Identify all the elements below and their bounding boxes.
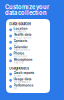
staticText: Ask first [14, 61, 24, 64]
staticText: Always on [14, 30, 27, 33]
staticText: data collection [5, 9, 47, 16]
staticText: Photos [14, 51, 25, 55]
button[interactable]: Health data [6, 33, 50, 39]
button[interactable]: Location [6, 27, 50, 33]
staticText: Off [14, 42, 18, 45]
button[interactable]: Contacts [6, 39, 50, 45]
button[interactable]: Performance [6, 83, 50, 90]
button[interactable]: Calendar [6, 45, 50, 51]
staticText: Selected [14, 55, 28, 58]
staticText: Crash reports [14, 71, 35, 75]
staticText: Microphone [14, 58, 33, 61]
button[interactable]: Crash reports [6, 71, 50, 77]
staticText: Steps, sleep [14, 36, 32, 39]
staticText: Performance [14, 83, 34, 87]
staticText: Calendar [14, 45, 28, 49]
staticText: Data sources [9, 22, 31, 26]
button[interactable]: Microphone [6, 58, 50, 64]
staticText: Events only [14, 48, 30, 52]
staticText: Contacts [14, 39, 28, 43]
staticText: On [14, 87, 18, 90]
staticText: Share [14, 74, 22, 77]
button[interactable]: Usage data [6, 77, 50, 83]
staticText: Customize your [5, 4, 49, 10]
staticText: Diagnostics [9, 66, 29, 70]
button[interactable]: Photos [6, 51, 50, 58]
staticText: Anonymous [14, 80, 30, 84]
staticText: Usage data [14, 77, 32, 81]
staticText: Location [14, 27, 28, 30]
staticText: Health data [14, 33, 32, 37]
